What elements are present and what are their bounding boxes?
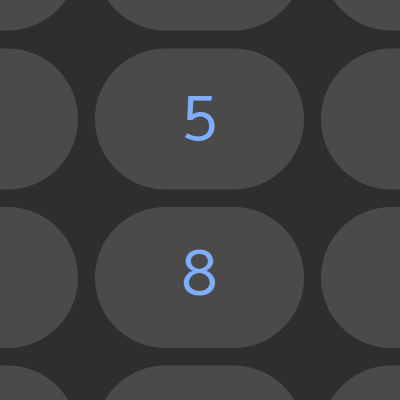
staticText: 5 (182, 60, 216, 173)
button[interactable]: star (0, 365, 78, 400)
button[interactable]: 4 (0, 48, 78, 189)
button[interactable]: 2 (95, 0, 304, 30)
button[interactable]: 8 (95, 207, 304, 348)
button[interactable]: pound (321, 365, 400, 400)
button[interactable]: 6 (321, 48, 400, 189)
button[interactable]: 9 (321, 207, 400, 348)
button[interactable]: 7 (0, 207, 78, 348)
staticText: 8 (181, 218, 217, 332)
button[interactable]: 5 (95, 48, 304, 189)
button[interactable]: 1 (0, 0, 78, 30)
button[interactable]: 0 (95, 365, 304, 400)
button[interactable]: 3 (321, 0, 400, 30)
